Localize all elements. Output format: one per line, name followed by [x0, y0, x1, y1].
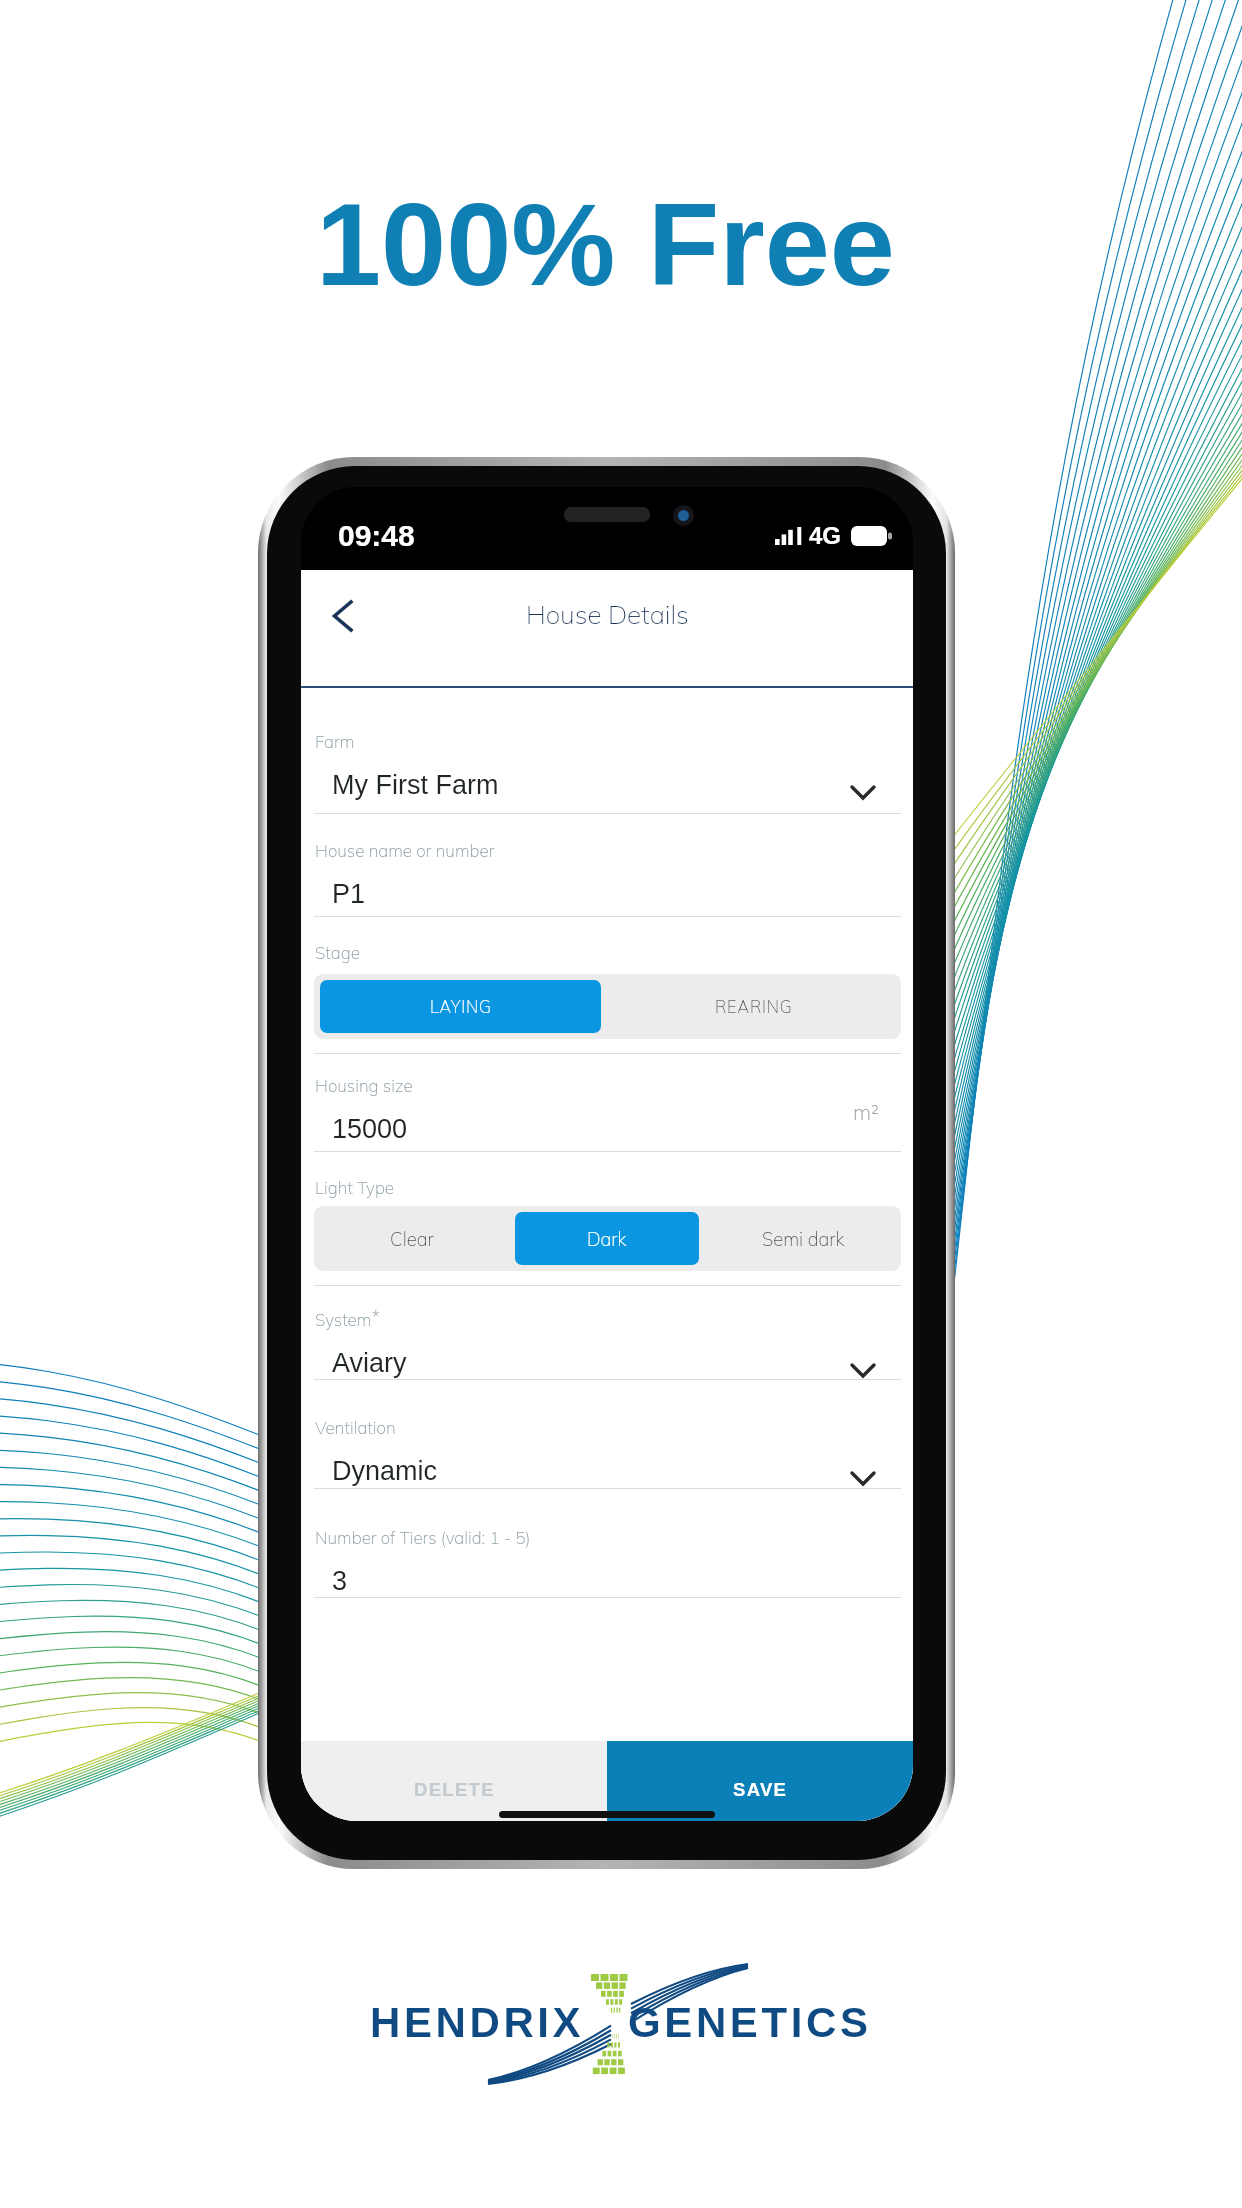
staticText: m²: [853, 1099, 880, 1125]
button[interactable]: Open Farm dropdown: [841, 770, 885, 814]
button[interactable]: Open System dropdown: [841, 1348, 885, 1392]
staticText: House Details: [526, 598, 689, 631]
staticText: 4G: [809, 522, 842, 549]
staticText: GENETICS: [628, 1999, 872, 2046]
staticText: Stage: [315, 942, 360, 963]
staticText: Semi dark: [762, 1227, 845, 1250]
staticText: My First Farm: [332, 770, 499, 800]
button[interactable]: Back: [314, 588, 370, 644]
staticText: System: [315, 1309, 372, 1330]
staticText: Farm: [315, 731, 355, 752]
button[interactable]: Open Ventilation dropdown: [841, 1456, 885, 1500]
staticText: 100% Free: [316, 179, 895, 310]
staticText: *: [372, 1306, 380, 1327]
staticText: HENDRIX: [370, 1999, 585, 2046]
staticText: 15000: [332, 1114, 408, 1144]
button[interactable]: SAVE: [607, 1741, 913, 1821]
staticText: DELETE: [414, 1779, 495, 1800]
button[interactable]: LAYING: [320, 980, 601, 1033]
button[interactable]: Clear: [320, 1212, 503, 1265]
button[interactable]: REARING: [613, 980, 895, 1033]
button[interactable]: Dark: [515, 1212, 699, 1265]
staticText: Clear: [390, 1227, 434, 1250]
staticText: Number of Tiers (valid: 1 - 5): [315, 1527, 531, 1548]
staticText: P1: [332, 879, 366, 909]
staticText: Ventilation: [315, 1417, 396, 1438]
staticText: REARING: [715, 996, 793, 1017]
staticText: 3: [332, 1566, 348, 1596]
button[interactable]: Semi dark: [711, 1212, 895, 1265]
staticText: Housing size: [315, 1075, 413, 1096]
staticText: Light Type: [315, 1177, 395, 1198]
staticText: SAVE: [733, 1779, 788, 1800]
staticText: 09:48: [338, 519, 415, 553]
staticText: Aviary: [332, 1348, 407, 1378]
button[interactable]: DELETE: [301, 1741, 607, 1821]
staticText: Dark: [587, 1227, 627, 1250]
staticText: House name or number: [315, 840, 495, 861]
staticText: LAYING: [430, 996, 492, 1017]
staticText: Dynamic: [332, 1456, 438, 1486]
